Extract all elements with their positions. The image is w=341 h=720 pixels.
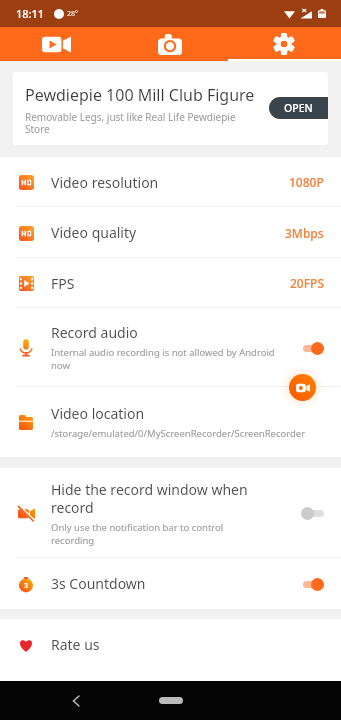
button[interactable]: OPEN — [269, 97, 328, 119]
staticText: Pewdiepie 100 Mill Club Figure — [25, 84, 255, 106]
staticText: 20FPS — [290, 275, 324, 291]
staticText: OPEN — [284, 101, 313, 115]
staticText: Video resolution — [51, 173, 159, 192]
button[interactable]: Video quality — [0, 207, 341, 258]
button[interactable]: Back — [66, 691, 86, 711]
staticText: 18:11 — [16, 6, 45, 21]
staticText: Rate us — [51, 635, 100, 654]
staticText: 28° — [67, 9, 79, 19]
staticText: Video quality — [51, 223, 137, 242]
staticText: Hide the record window when record — [51, 480, 291, 517]
staticText: 3 — [24, 581, 29, 591]
button[interactable]: Home — [159, 697, 183, 704]
button[interactable]: 3 — [0, 558, 341, 609]
button[interactable]: FPS — [0, 258, 341, 308]
button[interactable]: Toggle — [301, 574, 324, 594]
button[interactable]: Toggle — [301, 338, 324, 358]
button[interactable]: Record audio — [0, 308, 341, 387]
button[interactable]: Video recorder — [0, 27, 113, 61]
staticText: /storage/emulated/0/MyScreenRecorder/Scr… — [51, 427, 306, 440]
button[interactable]: Pewdiepie 100 Mill Club Figure — [13, 72, 328, 145]
button[interactable]: Video resolution — [0, 157, 341, 207]
staticText: Video location — [51, 404, 145, 423]
button[interactable]: Toggle — [301, 503, 324, 523]
staticText: Only use the notification bar to control… — [51, 521, 233, 547]
staticText: Internal audio recording is not allowed … — [51, 346, 275, 372]
button[interactable]: Video location — [0, 387, 341, 457]
button[interactable]: Screenshot — [113, 27, 227, 61]
staticText: 1080P — [289, 174, 324, 190]
staticText: 3s Countdown — [51, 574, 146, 593]
button[interactable]: Rate us — [0, 619, 341, 670]
staticText: Record audio — [51, 323, 138, 342]
staticText: 3Mbps — [285, 225, 324, 241]
staticText: Removable Legs, just like Real Life Pewd… — [25, 110, 253, 136]
button[interactable]: Record — [289, 374, 316, 401]
staticText: FPS — [51, 274, 75, 293]
button[interactable]: Settings — [227, 27, 341, 61]
button[interactable]: Hide the record window when record — [0, 468, 341, 558]
